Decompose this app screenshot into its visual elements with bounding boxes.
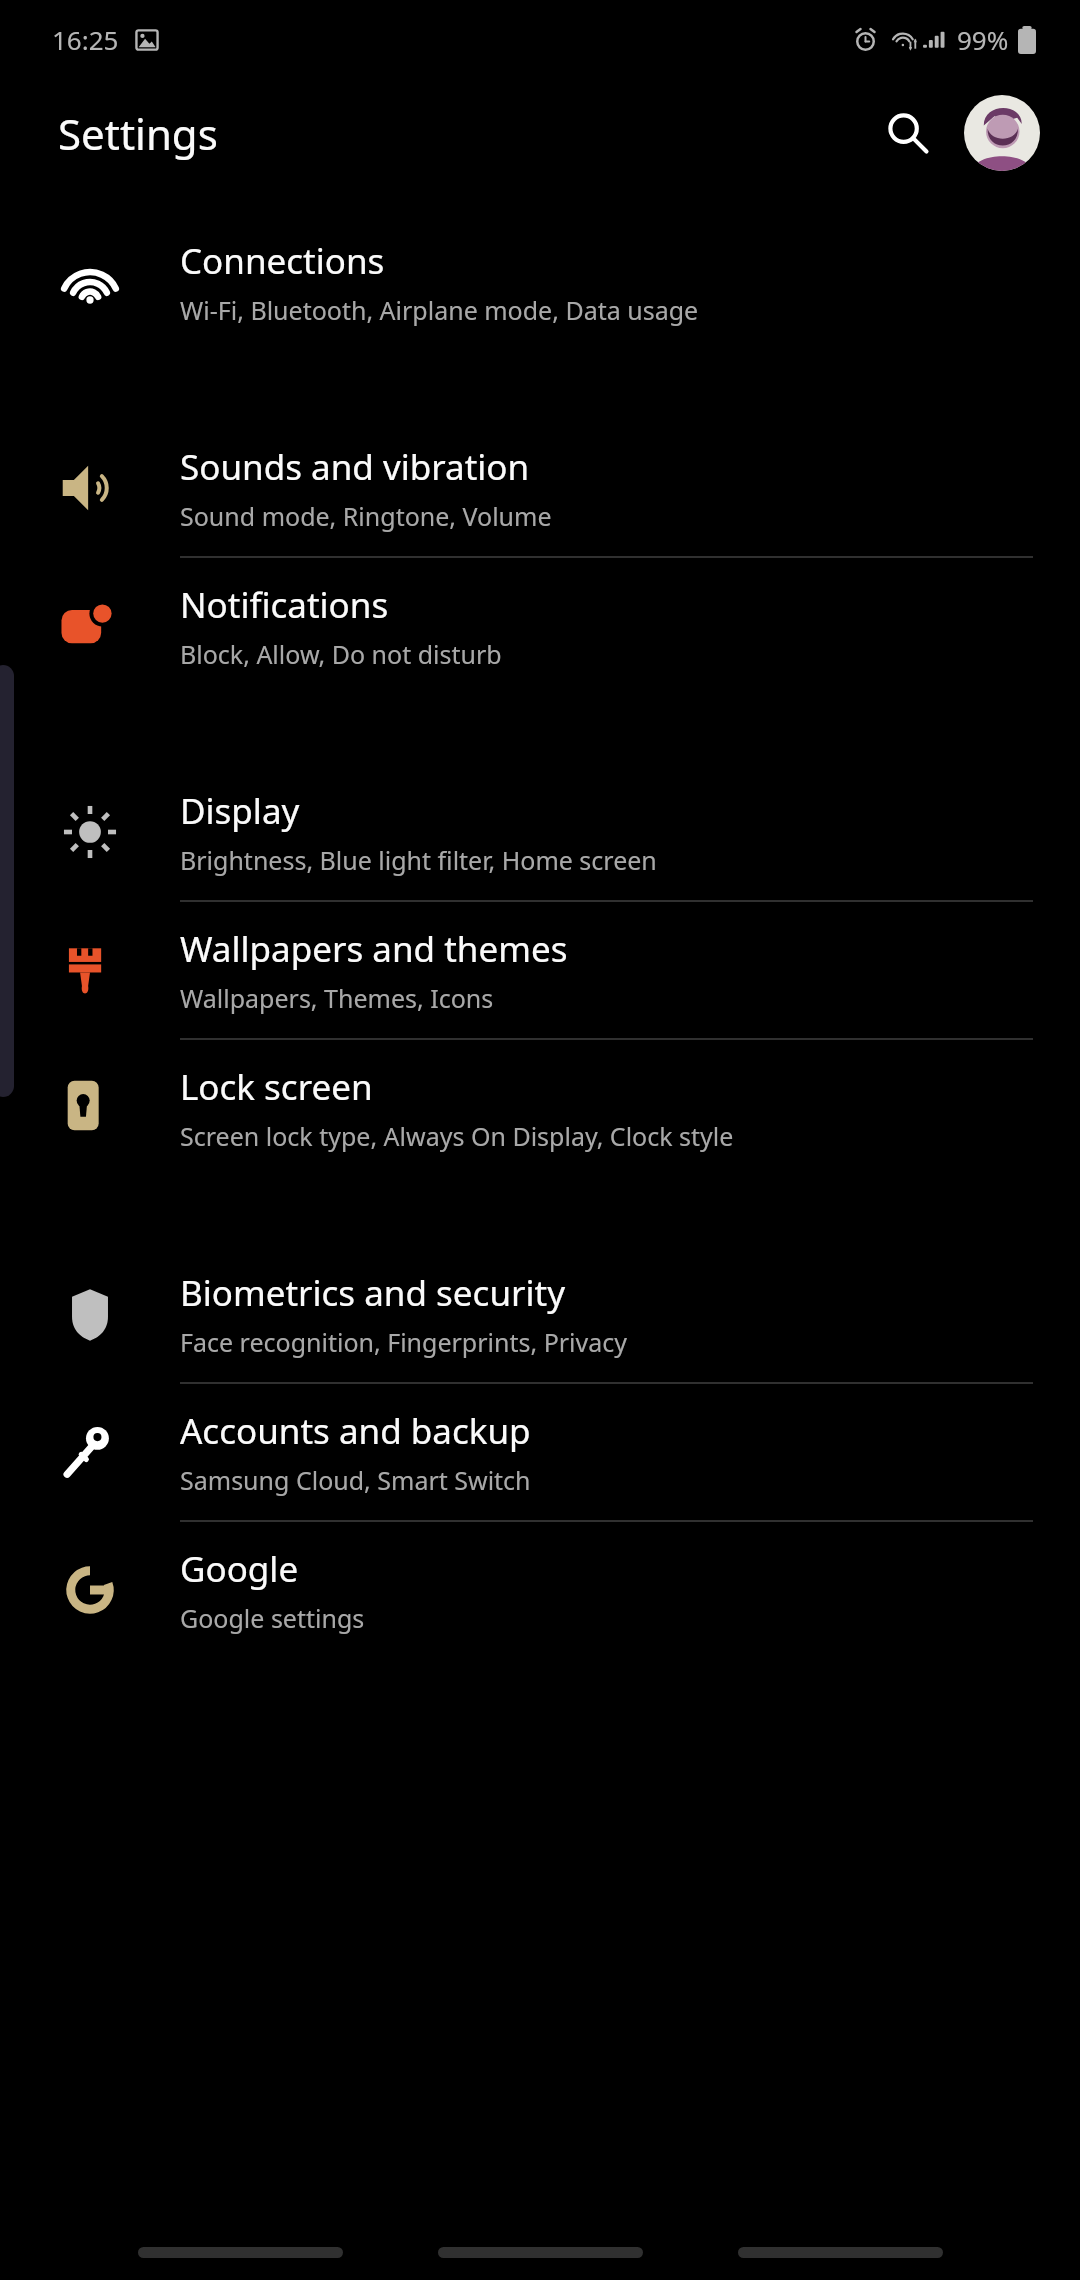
button[interactable]: Biometrics and security bbox=[0, 1246, 1080, 1382]
staticText: Brightness, Blue light filter, Home scre… bbox=[180, 843, 657, 877]
button[interactable]: Connections bbox=[0, 214, 1080, 350]
button[interactable]: Google bbox=[0, 1522, 1080, 1658]
button[interactable]: Accounts and backup bbox=[0, 1384, 1080, 1520]
staticText: Connections bbox=[180, 237, 385, 285]
button[interactable]: Back bbox=[690, 2212, 990, 2258]
staticText: Sound mode, Ringtone, Volume bbox=[180, 499, 552, 533]
button[interactable]: Lock screen bbox=[0, 1040, 1080, 1176]
staticText: Google settings bbox=[180, 1601, 365, 1635]
staticText: Wallpapers, Themes, Icons bbox=[180, 981, 494, 1015]
button[interactable]: Notifications bbox=[0, 558, 1080, 694]
staticText: Sounds and vibration bbox=[180, 443, 530, 491]
staticText: 16:25 bbox=[52, 22, 119, 57]
staticText: Wallpapers and themes bbox=[180, 925, 568, 973]
button[interactable]: Display bbox=[0, 764, 1080, 900]
staticText: Notifications bbox=[180, 581, 389, 629]
staticText: Screen lock type, Always On Display, Clo… bbox=[180, 1119, 734, 1153]
staticText: Samsung Cloud, Smart Switch bbox=[180, 1463, 531, 1497]
staticText: Wi-Fi, Bluetooth, Airplane mode, Data us… bbox=[180, 293, 699, 327]
staticText: Block, Allow, Do not disturb bbox=[180, 637, 502, 671]
button[interactable]: Wallpapers and themes bbox=[0, 902, 1080, 1038]
staticText: Display bbox=[180, 787, 300, 835]
button[interactable]: Recents bbox=[90, 2212, 390, 2258]
staticText: 99% bbox=[957, 22, 1009, 57]
staticText: Lock screen bbox=[180, 1063, 373, 1111]
staticText: Google bbox=[180, 1545, 299, 1593]
button[interactable]: Home bbox=[390, 2212, 690, 2258]
staticText: Face recognition, Fingerprints, Privacy bbox=[180, 1325, 628, 1359]
staticText: Biometrics and security bbox=[180, 1269, 566, 1317]
staticText: Settings bbox=[58, 105, 218, 162]
button[interactable]: Sounds and vibration bbox=[0, 420, 1080, 556]
button[interactable]: Search bbox=[866, 91, 950, 175]
staticText: Accounts and backup bbox=[180, 1407, 531, 1455]
button[interactable]: Profile bbox=[960, 91, 1044, 175]
